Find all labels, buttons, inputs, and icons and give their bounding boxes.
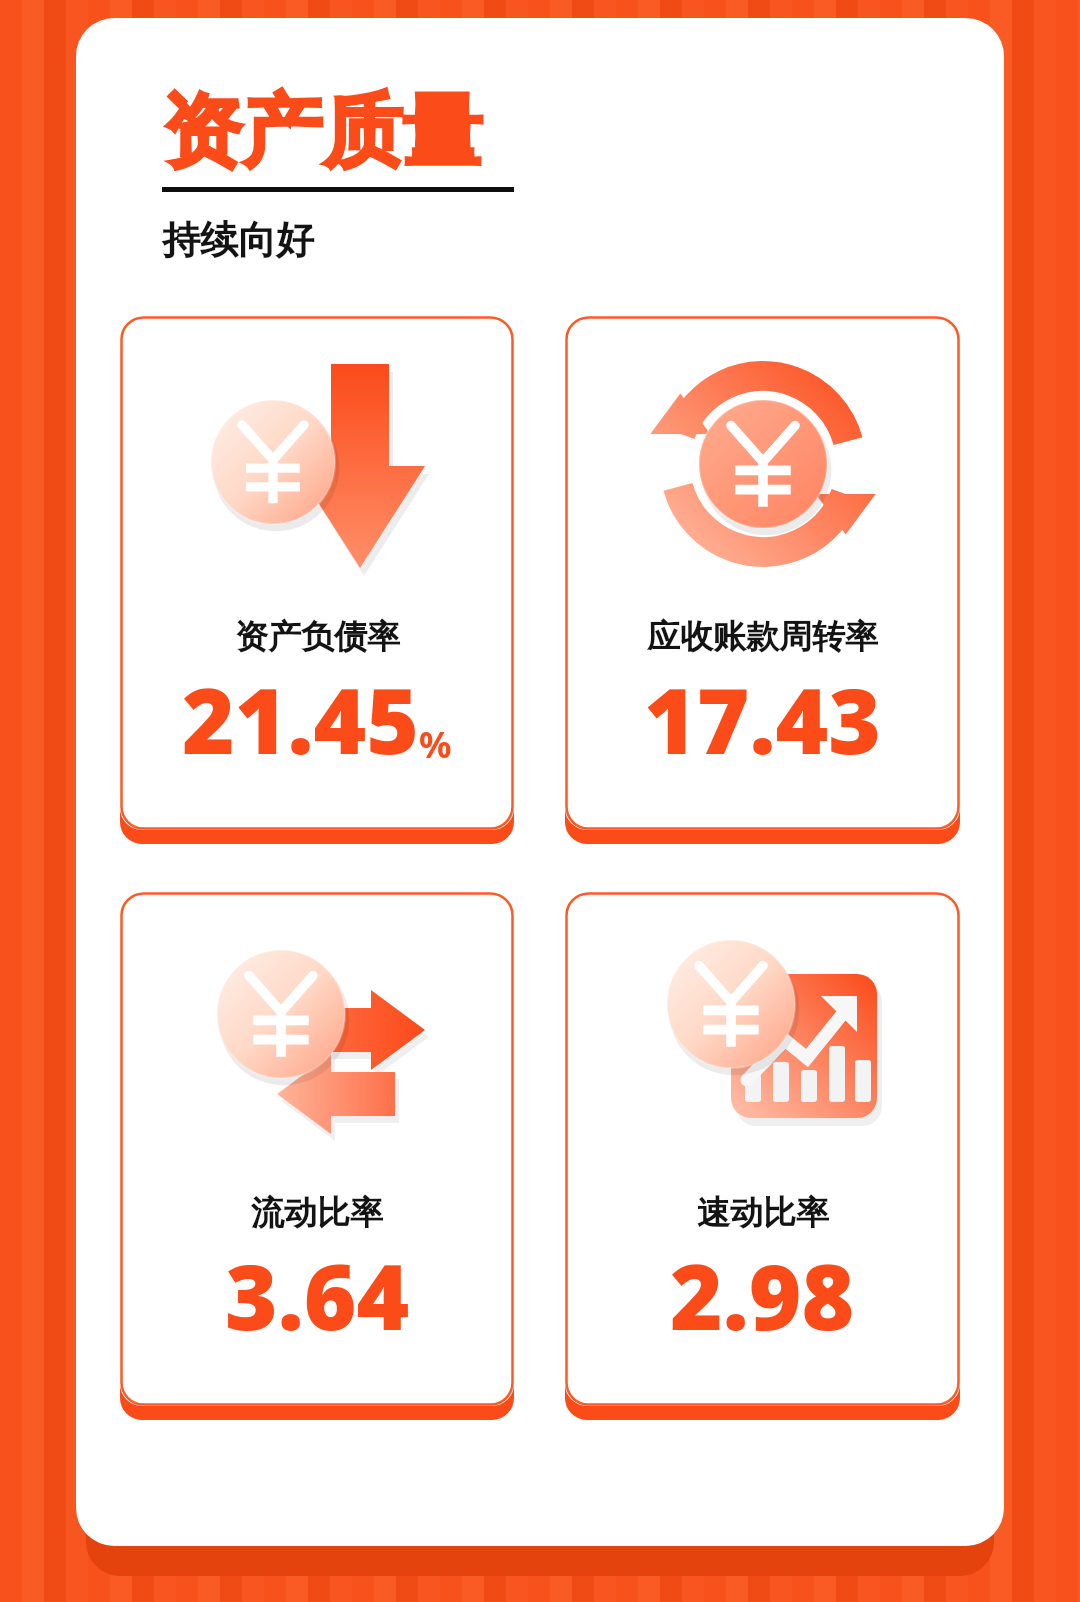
staticText: % <box>419 720 452 769</box>
staticText: 3.64 <box>225 1234 410 1357</box>
other: 资产负债率 <box>120 316 514 830</box>
other: 流动比率 <box>120 892 514 1406</box>
staticText: 应收账款周转率 <box>647 616 878 658</box>
staticText: 资产质量 <box>162 82 482 183</box>
other: 速动比率 <box>565 892 960 1406</box>
staticText: 2.98 <box>670 1234 855 1357</box>
staticText: 17.43 <box>644 658 881 781</box>
button[interactable]: 资产负债率 <box>120 316 514 844</box>
button[interactable]: 速动比率 <box>565 892 960 1420</box>
button[interactable]: 应收账款周转率 <box>565 316 960 844</box>
button[interactable]: 流动比率 <box>120 892 514 1420</box>
staticText: 21.45 <box>182 658 419 781</box>
staticText: 持续向好 <box>162 216 314 264</box>
staticText: 速动比率 <box>697 1192 829 1234</box>
other: 应收账款周转率 <box>565 316 960 830</box>
staticText: 流动比率 <box>251 1192 383 1234</box>
staticText: 资产负债率 <box>235 616 400 658</box>
